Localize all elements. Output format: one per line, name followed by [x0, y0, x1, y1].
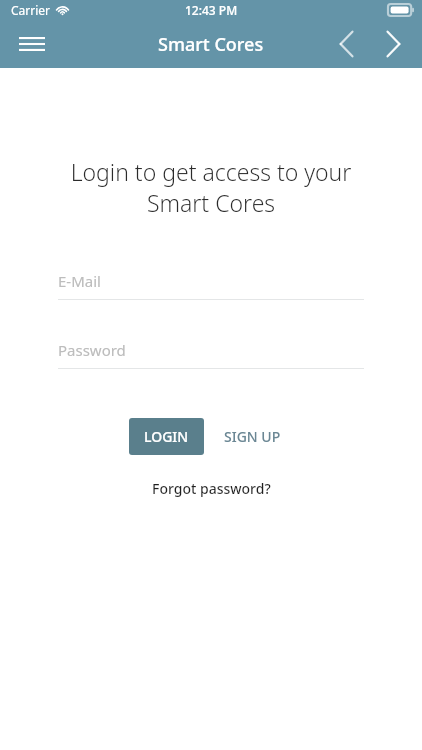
staticText: SIGN UP [224, 427, 281, 446]
staticText: E-Mail [58, 271, 101, 291]
button[interactable]: Password [58, 340, 364, 369]
staticText: Forgot password? [152, 479, 271, 498]
button[interactable]: Menu [10, 22, 54, 66]
staticText: LOGIN [144, 427, 189, 446]
button[interactable]: Forgot password? [142, 475, 281, 502]
staticText: Carrier [11, 2, 51, 18]
staticText: 12:43 PM [185, 2, 238, 18]
button[interactable]: E-Mail [58, 271, 364, 300]
button[interactable]: SIGN UP [212, 418, 293, 455]
staticText: Smart Cores [158, 32, 264, 57]
button[interactable]: Forward [370, 21, 416, 67]
button[interactable]: LOGIN [129, 418, 204, 455]
button[interactable]: Back [324, 21, 370, 67]
staticText: Login to get access to your Smart Cores [24, 156, 398, 219]
staticText: Password [58, 340, 126, 360]
